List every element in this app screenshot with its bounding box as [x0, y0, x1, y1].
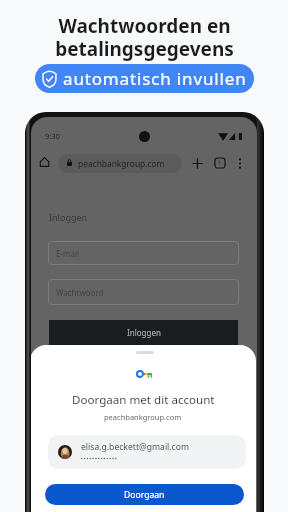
staticText: Wachtwoord: [56, 287, 104, 298]
button[interactable]: peachbankgroup.com: [58, 154, 182, 173]
other: More options: [238, 158, 242, 169]
staticText: peachbankgroup.com: [104, 412, 182, 422]
staticText: Wachtwoorden en betalingsgegevens: [55, 13, 234, 61]
staticText: automatisch invullen: [63, 67, 247, 90]
staticText: Inloggen: [49, 211, 88, 223]
staticText: Doorgaan met dit account: [72, 392, 215, 408]
other: Home: [40, 157, 49, 167]
staticText: elisa.g.beckett@gmail.com: [81, 441, 189, 453]
staticText: Inloggen: [127, 327, 161, 338]
button[interactable]: Doorgaan: [45, 484, 244, 505]
button[interactable]: automatisch invullen: [35, 64, 254, 93]
button[interactable]: Inloggen: [49, 320, 238, 350]
other: Tabs: [215, 158, 225, 168]
staticText: 1: [218, 159, 222, 167]
button[interactable]: elisa.g.beckett@gmail.com: [48, 435, 246, 469]
staticText: 9:30: [45, 131, 60, 141]
staticText: peachbankgroup.com: [78, 158, 165, 169]
other: New tab: [192, 158, 203, 169]
staticText: Doorgaan: [124, 489, 165, 501]
staticText: E-mail: [56, 248, 80, 259]
